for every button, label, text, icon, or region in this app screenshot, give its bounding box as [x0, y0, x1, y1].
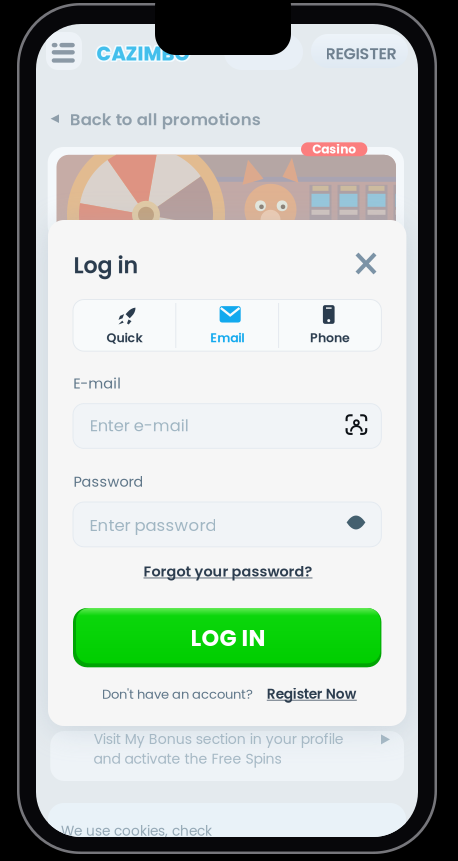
button[interactable]: Visit My Bonus section in your profile	[36, 24, 418, 837]
staticText: Forgot your password?	[143, 561, 312, 582]
staticText: Quick	[106, 329, 142, 347]
button[interactable]: Menu	[46, 32, 82, 70]
staticText: Casino	[312, 141, 356, 158]
button[interactable]: Don't have an account?	[36, 24, 418, 837]
staticText: CAZIMBO	[96, 42, 189, 69]
button[interactable]: Close	[353, 250, 379, 277]
button[interactable]: Phone	[279, 299, 381, 351]
staticText: and activate the Free Spins	[93, 749, 281, 769]
staticText: E-mail	[73, 373, 121, 394]
staticText: Email	[210, 329, 244, 347]
staticText: Password	[73, 472, 143, 492]
staticText: CAZIMBO	[95, 41, 188, 68]
button[interactable]: Forgot your password?	[138, 559, 318, 585]
staticText: CAZIMBO	[96, 39, 189, 66]
staticText: Enter password	[89, 514, 216, 537]
staticText: LOG IN	[191, 622, 266, 654]
staticText: CAZIMBO	[98, 39, 191, 66]
staticText: Don't have an account?	[102, 685, 253, 703]
staticText: CAZIMBO	[95, 39, 188, 66]
button[interactable]: Back to all promotions	[36, 24, 418, 837]
staticText: REGISTER	[325, 42, 396, 65]
staticText: CAZIMBO	[98, 41, 191, 68]
staticText: CAZIMBO	[96, 40, 189, 67]
staticText: Visit My Bonus section in your profile	[94, 729, 344, 749]
button[interactable]: Quick	[73, 299, 176, 351]
staticText: We use cookies, check	[61, 821, 212, 840]
staticText: CAZIMBO	[98, 40, 191, 67]
button[interactable]: LOG IN	[36, 24, 418, 837]
staticText: Register Now	[267, 684, 357, 704]
staticText: Phone	[310, 329, 350, 347]
staticText: Back to all promotions	[70, 108, 261, 131]
staticText: Enter e-mail	[90, 414, 189, 437]
button[interactable]: REGISTER	[311, 34, 408, 68]
staticText: Log in	[73, 250, 138, 281]
button[interactable]: Email	[176, 299, 279, 351]
staticText: CAZIMBO	[95, 40, 188, 67]
